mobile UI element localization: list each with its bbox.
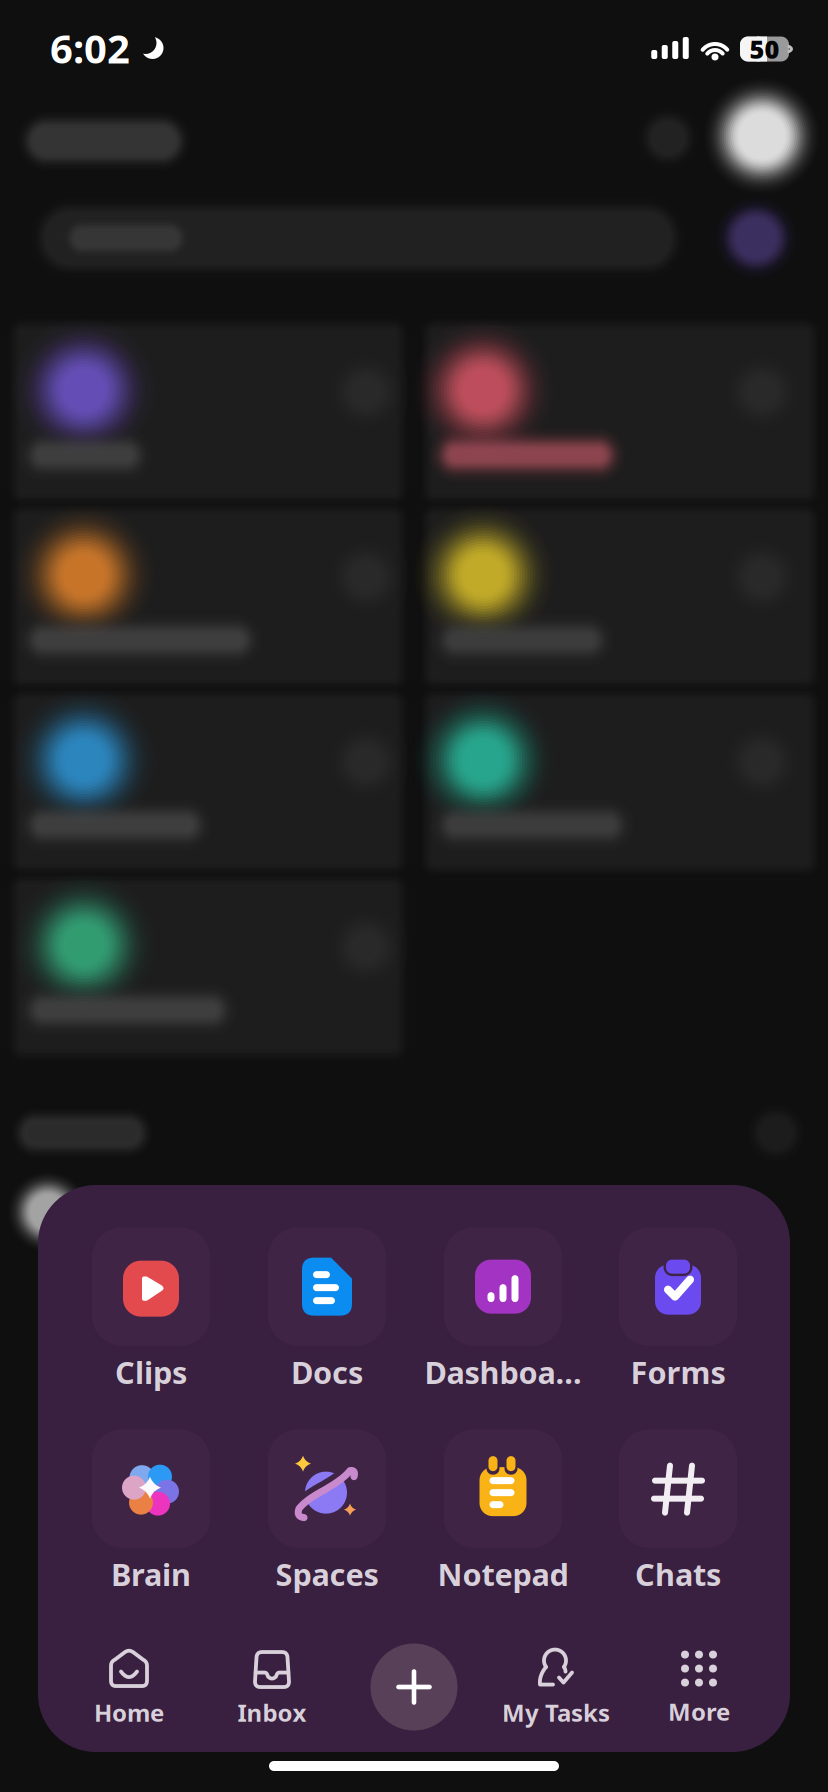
button[interactable]: Home xyxy=(54,1648,204,1728)
staticText: Notepad xyxy=(437,1554,568,1594)
staticText: Clips xyxy=(115,1352,187,1392)
button[interactable]: My Tasks xyxy=(481,1648,631,1728)
button[interactable]: Chats xyxy=(590,1430,766,1594)
button[interactable]: Spaces xyxy=(239,1430,415,1594)
button[interactable]: Dashboa… xyxy=(415,1228,591,1392)
staticText: More xyxy=(668,1696,730,1727)
button[interactable]: Docs xyxy=(239,1228,415,1392)
staticText: 6:02 xyxy=(50,21,130,74)
staticText: 50 xyxy=(749,32,779,66)
staticText: Inbox xyxy=(237,1697,306,1728)
button[interactable]: Create xyxy=(370,1643,457,1730)
button[interactable]: Brain xyxy=(63,1430,239,1594)
staticText: Spaces xyxy=(275,1554,378,1594)
staticText: Chats xyxy=(635,1554,721,1594)
button[interactable]: More xyxy=(624,1649,774,1727)
button[interactable]: Forms xyxy=(590,1228,766,1392)
staticText: Forms xyxy=(630,1352,725,1392)
button[interactable]: Clips xyxy=(63,1228,239,1392)
button[interactable]: Inbox xyxy=(197,1648,347,1728)
staticText: Dashboa… xyxy=(424,1352,581,1392)
staticText: Home xyxy=(94,1697,164,1728)
button[interactable]: Notepad xyxy=(415,1430,591,1594)
staticText: Docs xyxy=(291,1352,363,1392)
staticText: Brain xyxy=(111,1554,191,1594)
staticText: My Tasks xyxy=(502,1697,610,1728)
